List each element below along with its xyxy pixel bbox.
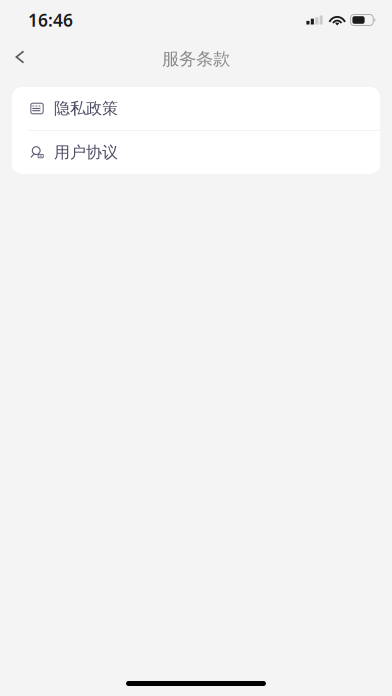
button[interactable]: 用户协议	[12, 131, 380, 174]
button[interactable]: 隐私政策	[12, 87, 380, 130]
button[interactable]: Back	[0, 40, 40, 74]
staticText: 隐私政策	[54, 99, 118, 118]
staticText: 用户协议	[54, 143, 118, 162]
staticText: 16:46	[28, 8, 73, 31]
staticText: 服务条款	[162, 48, 230, 70]
